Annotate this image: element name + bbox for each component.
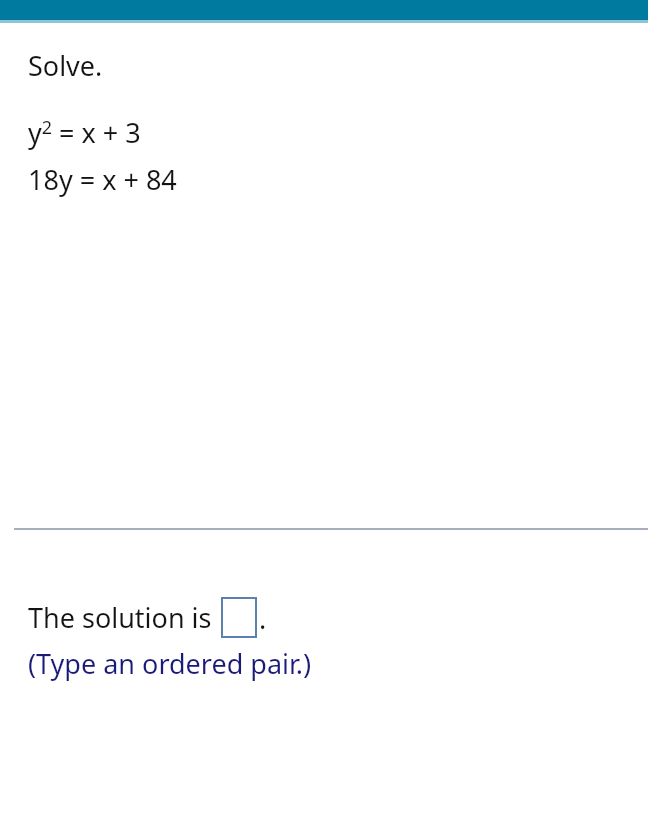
button[interactable]: (Type an ordered pair.)	[28, 645, 312, 682]
button[interactable]: The solution is	[28, 597, 648, 638]
button[interactable]: Answer input box	[221, 597, 257, 638]
staticText: The solution is	[28, 599, 212, 636]
staticText: 18y = x + 84	[28, 161, 177, 198]
staticText: Solve.	[28, 47, 103, 84]
staticText: y2 = x + 3	[28, 114, 141, 151]
staticText: .	[259, 600, 267, 637]
